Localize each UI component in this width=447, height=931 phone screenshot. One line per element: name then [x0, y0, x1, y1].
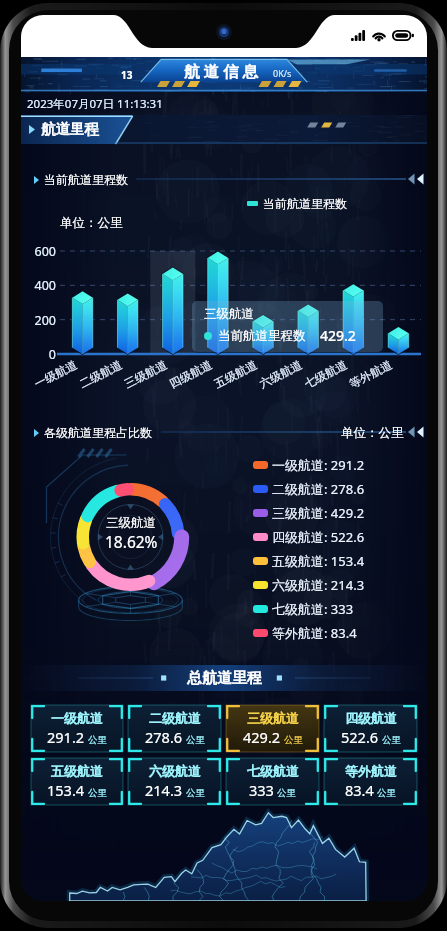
- button[interactable]: 五级航道: 153.4: [253, 549, 365, 573]
- staticText: 153.4: [47, 780, 85, 800]
- staticText: 522.6: [341, 727, 379, 747]
- staticText: 总航道里程: [187, 669, 262, 688]
- button[interactable]: 航道里程: [21, 115, 427, 144]
- staticText: 一级航道: [51, 710, 103, 726]
- staticText: 四级航道: [345, 710, 397, 726]
- staticText: 公里: [186, 734, 205, 746]
- staticText: 三级航道: [204, 306, 254, 322]
- staticText: 三级航道: 429.2: [272, 504, 365, 522]
- button[interactable]: 三级航道: [226, 705, 319, 752]
- button[interactable]: 七级航道: 333: [253, 597, 354, 621]
- button[interactable]: 等外航道: 83.4: [253, 621, 357, 645]
- staticText: 七级航道: [247, 763, 299, 779]
- staticText: 公里: [88, 787, 107, 799]
- staticText: 214.3: [145, 780, 183, 800]
- staticText: 等外航道: [345, 763, 397, 779]
- staticText: 六级航道: [149, 763, 201, 779]
- staticText: 429.2: [243, 727, 281, 747]
- staticText: 三级航道: [122, 357, 169, 391]
- staticText: 二级航道: [149, 710, 201, 726]
- staticText: 一级航道: [32, 357, 79, 391]
- staticText: 二级航道: [77, 357, 124, 391]
- staticText: 13: [121, 68, 133, 82]
- staticText: 三级航道: [247, 710, 299, 726]
- button[interactable]: 四级航道: [324, 705, 417, 752]
- staticText: 278.6: [145, 727, 183, 747]
- staticText: 七级航道: [302, 357, 349, 391]
- staticText: 291.2: [47, 727, 85, 747]
- staticText: 二级航道: 278.6: [272, 480, 365, 498]
- button[interactable]: 一级航道: 291.2: [253, 453, 365, 477]
- staticText: 一级航道: 291.2: [272, 456, 365, 474]
- staticText: 航道里程: [41, 120, 99, 138]
- button[interactable]: 二级航道: [128, 705, 221, 752]
- staticText: 五级航道: [51, 763, 103, 779]
- staticText: 公里: [277, 787, 296, 799]
- staticText: 2023年07月07日 11:13:31: [27, 96, 163, 112]
- button[interactable]: 五级航道: [31, 758, 123, 805]
- staticText: 18.62%: [105, 531, 158, 552]
- staticText: 600: [21, 243, 56, 260]
- staticText: 0: [21, 346, 56, 363]
- staticText: 0K/s: [273, 67, 292, 79]
- staticText: 公里: [382, 734, 401, 746]
- staticText: 航 道 信 息: [184, 60, 259, 81]
- staticText: 400: [21, 277, 56, 294]
- button[interactable]: 当前航道里程数: [21, 167, 427, 191]
- button[interactable]: 等外航道: [324, 758, 417, 805]
- staticText: 四级航道: [167, 357, 214, 391]
- button[interactable]: 六级航道: 214.3: [253, 573, 365, 597]
- staticText: 当前航道里程数: [263, 196, 347, 211]
- staticText: 公里: [284, 734, 303, 746]
- staticText: 单位：公里: [60, 215, 123, 231]
- staticText: 六级航道: 214.3: [272, 576, 365, 594]
- button[interactable]: 各级航道里程占比数: [21, 420, 427, 444]
- button[interactable]: 四级航道: 522.6: [253, 525, 365, 549]
- staticText: 429.2: [320, 326, 356, 345]
- button[interactable]: 三级航道: 429.2: [253, 501, 365, 525]
- button[interactable]: 一级航道: [31, 705, 123, 752]
- staticText: 200: [21, 312, 56, 329]
- staticText: 公里: [186, 787, 205, 799]
- staticText: 公里: [88, 734, 107, 746]
- button[interactable]: 六级航道: [128, 758, 221, 805]
- staticText: 公里: [377, 787, 396, 799]
- staticText: 五级航道: [212, 357, 259, 391]
- staticText: 五级航道: 153.4: [272, 552, 365, 570]
- staticText: 等外航道: [347, 357, 394, 391]
- staticText: 83.4: [345, 780, 374, 800]
- staticText: 等外航道: 83.4: [272, 624, 357, 642]
- staticText: 当前航道里程数: [44, 172, 128, 187]
- staticText: 四级航道: 522.6: [272, 528, 365, 546]
- staticText: 单位：公里: [341, 425, 404, 441]
- staticText: 333: [249, 780, 274, 800]
- button[interactable]: 七级航道: [226, 758, 319, 805]
- staticText: 七级航道: 333: [272, 600, 354, 618]
- staticText: 各级航道里程占比数: [44, 425, 152, 440]
- staticText: 三级航道: [106, 515, 156, 531]
- button[interactable]: 二级航道: 278.6: [253, 477, 365, 501]
- staticText: 当前航道里程数: [218, 328, 306, 344]
- staticText: 六级航道: [257, 357, 304, 391]
